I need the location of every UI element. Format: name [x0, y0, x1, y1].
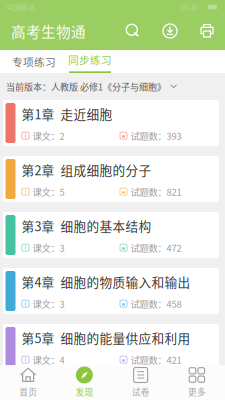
staticText: 课文：3 [32, 297, 64, 310]
staticText: 课文：4 [32, 353, 64, 366]
staticText: 试题数：458 [130, 297, 181, 310]
staticText: 当前版本：人教版 必修1《分子与细胞》 [6, 80, 166, 93]
button[interactable]: 专项练习 [12, 50, 56, 73]
button[interactable]: Download [157, 18, 183, 44]
staticText: 课文：2 [32, 129, 64, 142]
button[interactable]: 第5章 细胞的能量供应和利用 [3, 324, 219, 370]
button[interactable]: 第4章 细胞的物质输入和输出 [3, 268, 219, 314]
staticText: 第1章 走近细胞 [21, 105, 112, 123]
staticText: 试题数：472 [130, 241, 181, 254]
staticText: 试题数：393 [130, 129, 181, 142]
staticText: 第5章 细胞的能量供应和利用 [21, 329, 190, 347]
staticText: 更多 [188, 385, 206, 398]
staticText: 试题数：821 [130, 185, 181, 198]
staticText: 首页 [19, 385, 37, 398]
button[interactable]: 同步练习 [68, 50, 112, 73]
button[interactable]: Print [194, 18, 220, 44]
staticText: 课文：5 [32, 185, 64, 198]
staticText: 高考生物通 [11, 20, 86, 42]
staticText: 发现 [75, 385, 93, 398]
button[interactable]: 第1章 走近细胞 [3, 100, 219, 146]
staticText: 第2章 组成细胞的分子 [21, 161, 151, 179]
staticText: 专项练习 [12, 54, 56, 69]
staticText: 试题数：421 [130, 353, 181, 366]
button[interactable]: 发现 [56, 365, 112, 400]
button[interactable]: 第2章 组成细胞的分子 [3, 156, 219, 202]
staticText: 第4章 细胞的物质输入和输出 [21, 273, 190, 291]
button[interactable]: 首页 [0, 365, 56, 400]
staticText: 课文：3 [32, 241, 64, 254]
button[interactable]: 第3章 细胞的基本结构 [3, 212, 219, 258]
staticText: 第3章 细胞的基本结构 [21, 217, 151, 235]
button[interactable]: 试卷 [112, 365, 169, 400]
button[interactable]: 更多 [169, 365, 225, 400]
staticText: 10:30 [180, 2, 198, 12]
staticText: 中国移动 [6, 2, 34, 12]
staticText: 同步练习 [68, 52, 112, 67]
staticText: 试卷 [132, 385, 150, 398]
button[interactable]: Search [120, 18, 146, 44]
